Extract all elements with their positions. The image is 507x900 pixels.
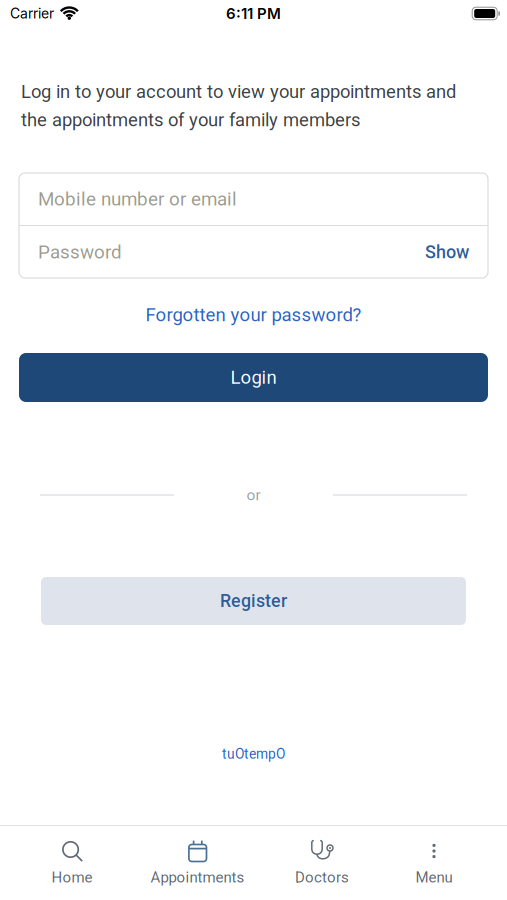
staticText: Register [220, 591, 287, 611]
staticText: Password [38, 241, 122, 263]
button[interactable]: tuOtempO [222, 746, 285, 762]
staticText: Doctors [295, 868, 349, 886]
staticText: 6:11 PM [226, 4, 281, 22]
button[interactable]: Forgotten your password? [145, 304, 361, 326]
secureTextField[interactable]: Password [38, 241, 415, 263]
staticText: Forgotten your password? [145, 304, 361, 326]
button[interactable]: Menu [415, 838, 452, 886]
staticText: the appointments of your family members [21, 109, 360, 131]
staticText: Home [51, 868, 92, 886]
staticText: Login [230, 367, 276, 388]
staticText: Carrier [10, 5, 54, 22]
staticText: Show [425, 241, 469, 263]
textField[interactable]: Mobile number or email [38, 188, 469, 210]
staticText: Appointments [150, 868, 244, 886]
button[interactable]: Appointments [150, 838, 244, 886]
staticText: Mobile number or email [38, 188, 237, 210]
staticText: Log in to your account to view your appo… [21, 81, 456, 103]
button[interactable]: Login [19, 353, 488, 402]
staticText: Menu [415, 868, 452, 886]
staticText: or [246, 486, 260, 504]
button[interactable]: Doctors [295, 838, 349, 886]
button[interactable]: Register [41, 577, 466, 625]
staticText: tuOtempO [222, 746, 285, 762]
button[interactable]: Show [425, 241, 469, 263]
button[interactable]: Home [51, 838, 92, 886]
